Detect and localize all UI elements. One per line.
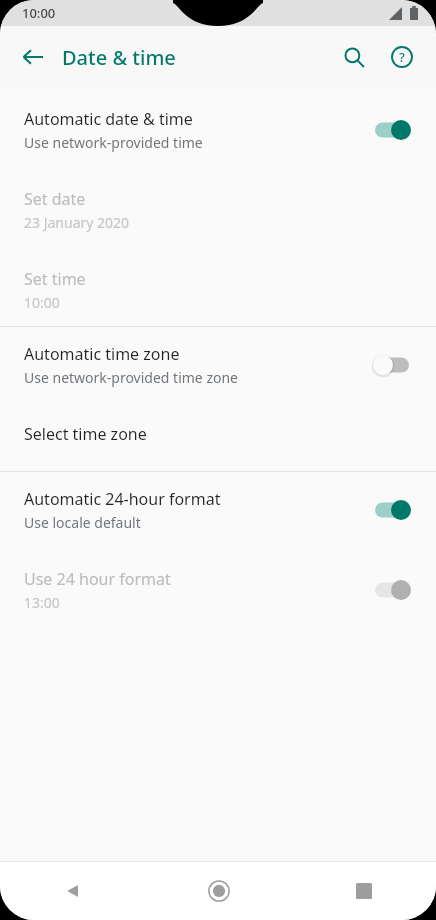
button[interactable]: Home (146, 862, 291, 920)
button[interactable]: Toggle (366, 346, 418, 384)
staticText: Use network-provided time (24, 133, 203, 152)
button[interactable]: Automatic date & time (0, 88, 436, 174)
staticText: Select time zone (24, 423, 147, 445)
staticText: Automatic 24-hour format (24, 488, 221, 510)
staticText: 23 January 2020 (24, 213, 130, 232)
staticText: ? (399, 48, 405, 66)
staticText: Date & time (62, 44, 176, 71)
staticText: 13:00 (24, 593, 60, 612)
button[interactable]: Automatic time zone (0, 327, 436, 409)
staticText: Use locale default (24, 513, 141, 532)
button[interactable]: Recent apps (291, 862, 436, 920)
staticText: Automatic time zone (24, 343, 180, 365)
button[interactable]: Select time zone (0, 409, 436, 471)
button[interactable]: Use 24 hour format (0, 554, 436, 626)
button[interactable]: Set date (0, 174, 436, 254)
staticText: Use 24 hour format (24, 568, 171, 590)
staticText: 10:00 (24, 293, 60, 312)
staticText: Use network-provided time zone (24, 368, 238, 387)
staticText: Set date (24, 188, 86, 210)
button[interactable]: Back (0, 862, 146, 920)
staticText: Automatic date & time (24, 108, 193, 130)
button[interactable]: Back (8, 33, 56, 81)
staticText: Set time (24, 268, 86, 290)
staticText: 10:00 (22, 4, 56, 22)
button[interactable]: Help (378, 33, 426, 81)
button[interactable]: Toggle (366, 111, 418, 149)
button[interactable]: Toggle (366, 491, 418, 529)
button[interactable]: Toggle (366, 571, 418, 609)
button[interactable]: Set time (0, 254, 436, 326)
button[interactable]: Search (330, 33, 378, 81)
button[interactable]: Automatic 24-hour format (0, 472, 436, 554)
